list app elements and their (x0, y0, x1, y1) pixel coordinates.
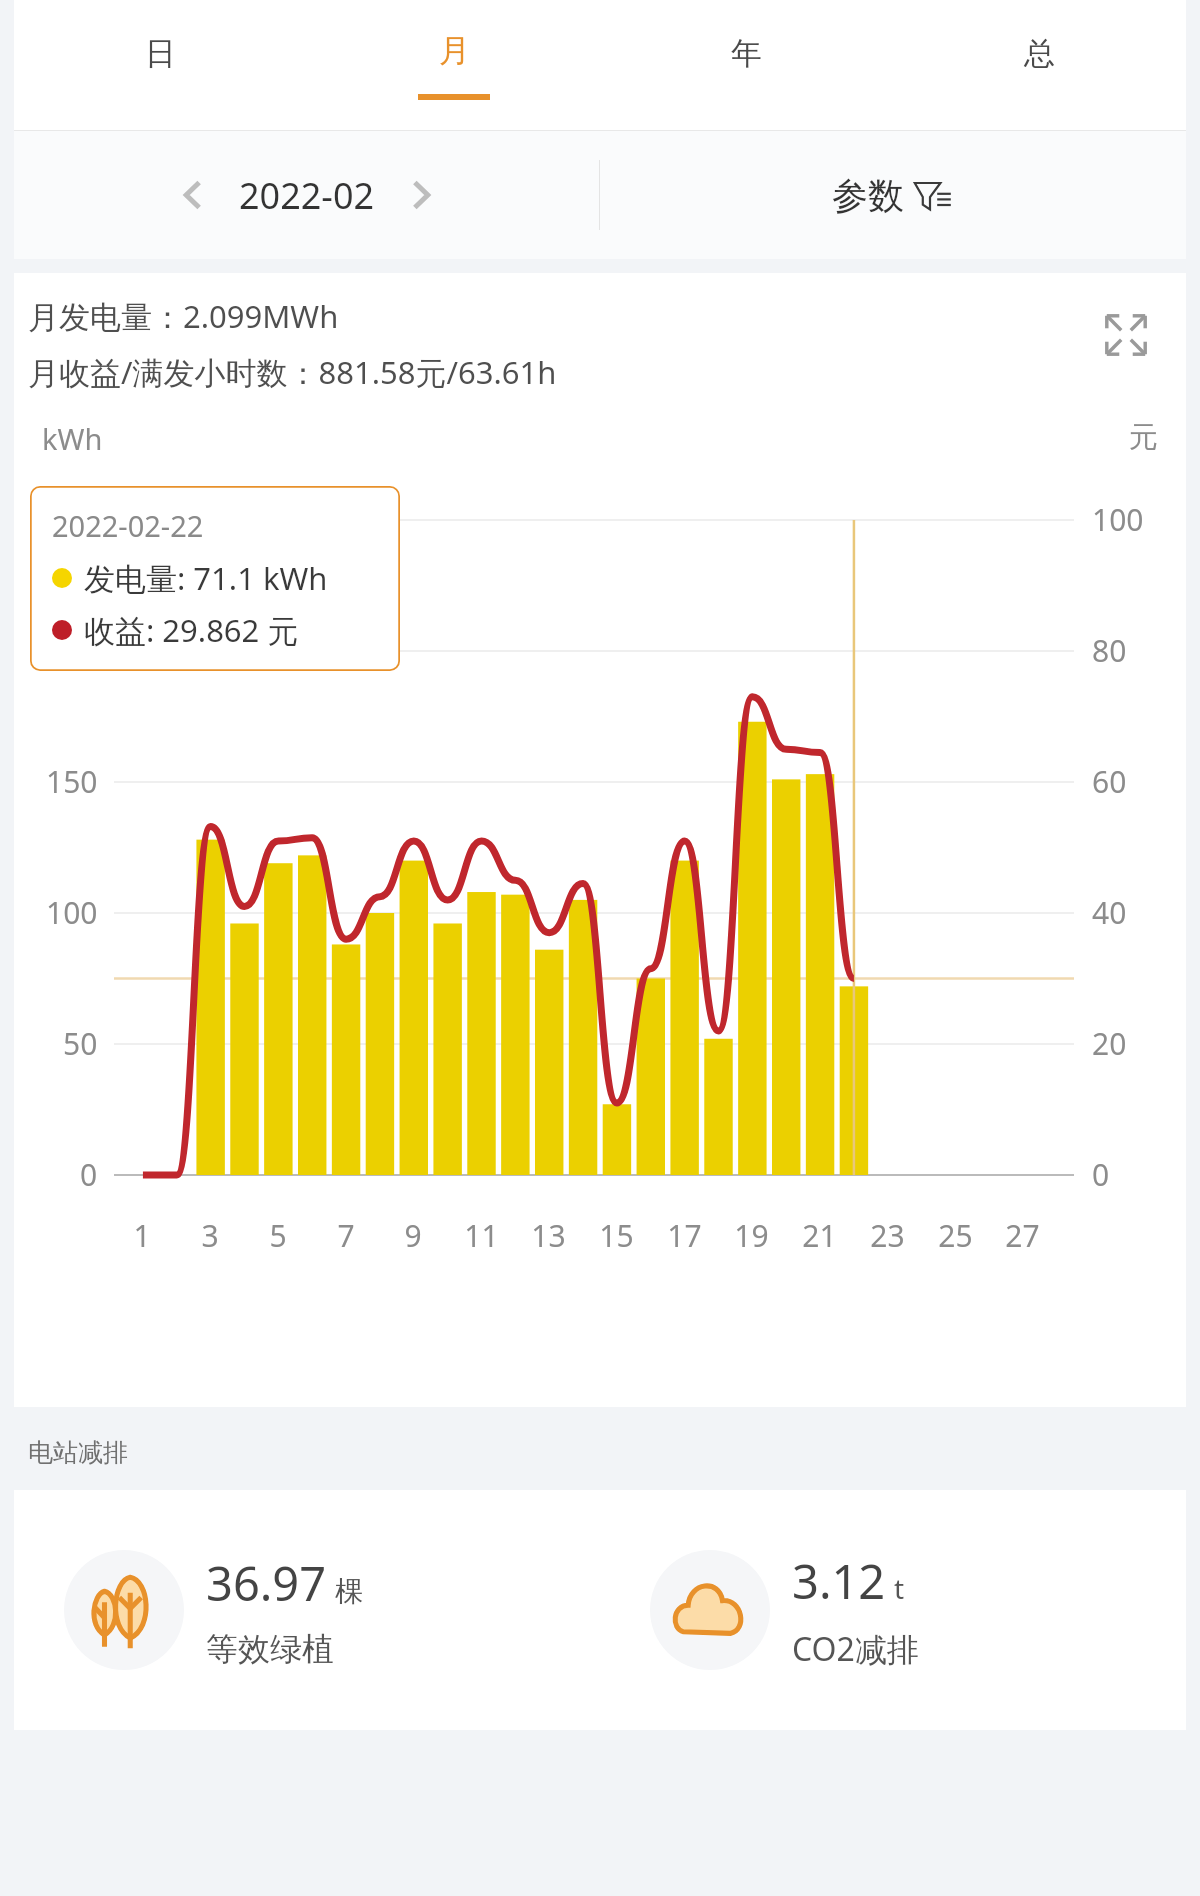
staticText: 年 (731, 34, 762, 73)
button[interactable]: 月 (307, 0, 600, 131)
staticText: 3 (201, 1215, 219, 1256)
staticText: 60 (1092, 761, 1127, 802)
staticText: 月发电量：2.099MWh (28, 295, 339, 337)
staticText: 80 (1092, 630, 1127, 671)
staticText: 3.12 (792, 1549, 886, 1613)
staticText: 13 (531, 1215, 566, 1256)
staticText: 1 (133, 1215, 151, 1256)
staticText: 40 (1092, 892, 1127, 933)
staticText: 5 (269, 1215, 287, 1256)
staticText: 电站减排 (28, 1437, 128, 1468)
staticText: 25 (938, 1215, 973, 1256)
staticText: 250 (46, 499, 98, 540)
staticText: 总 (1024, 34, 1055, 73)
staticText: 7 (337, 1215, 355, 1256)
staticText: CO2减排 (792, 1627, 919, 1671)
button[interactable]: 2022-02 (239, 171, 375, 220)
button[interactable]: 日 (14, 0, 307, 131)
staticText: 发电量: 71.1 kWh (84, 557, 328, 599)
staticText: 11 (464, 1215, 499, 1256)
staticText: 23 (870, 1215, 905, 1256)
staticText: 9 (404, 1215, 422, 1256)
staticText: 0 (80, 1154, 98, 1195)
staticText: 15 (599, 1215, 634, 1256)
staticText: 元 (1129, 419, 1158, 456)
button[interactable]: 36.97 (14, 1490, 600, 1730)
staticText: 2022-02-22 (52, 506, 204, 545)
staticText: 150 (46, 761, 98, 802)
staticText: 50 (63, 1023, 98, 1064)
button[interactable]: 全屏 (1094, 303, 1158, 367)
button[interactable]: 下一月 (393, 167, 449, 223)
staticText: kWh (42, 419, 103, 458)
button[interactable]: 参数 (600, 131, 1186, 259)
staticText: 等效绿植 (206, 1629, 334, 1669)
staticText: 收益: 29.862 元 (84, 609, 299, 651)
staticText: 0 (1092, 1154, 1110, 1195)
staticText: 21 (802, 1215, 837, 1256)
button[interactable]: 3.12 (600, 1490, 1186, 1730)
staticText: 棵 (335, 1574, 363, 1609)
staticText: 19 (734, 1215, 769, 1256)
staticText: 20 (1092, 1023, 1127, 1064)
staticText: 月 (439, 31, 470, 70)
staticText: 100 (1092, 499, 1144, 540)
button[interactable]: 总 (893, 0, 1186, 131)
staticText: 月收益/满发小时数：881.58元/63.61h (28, 351, 557, 393)
staticText: 日 (145, 34, 176, 73)
staticText: 参数 (832, 173, 904, 218)
staticText: 36.97 (206, 1551, 327, 1615)
button[interactable]: 年 (600, 0, 893, 131)
button[interactable]: 上一月 (165, 167, 221, 223)
staticText: 100 (46, 892, 98, 933)
staticText: 17 (667, 1215, 702, 1256)
staticText: t (894, 1569, 905, 1607)
staticText: 27 (1005, 1215, 1040, 1256)
staticText: 200 (46, 630, 98, 671)
